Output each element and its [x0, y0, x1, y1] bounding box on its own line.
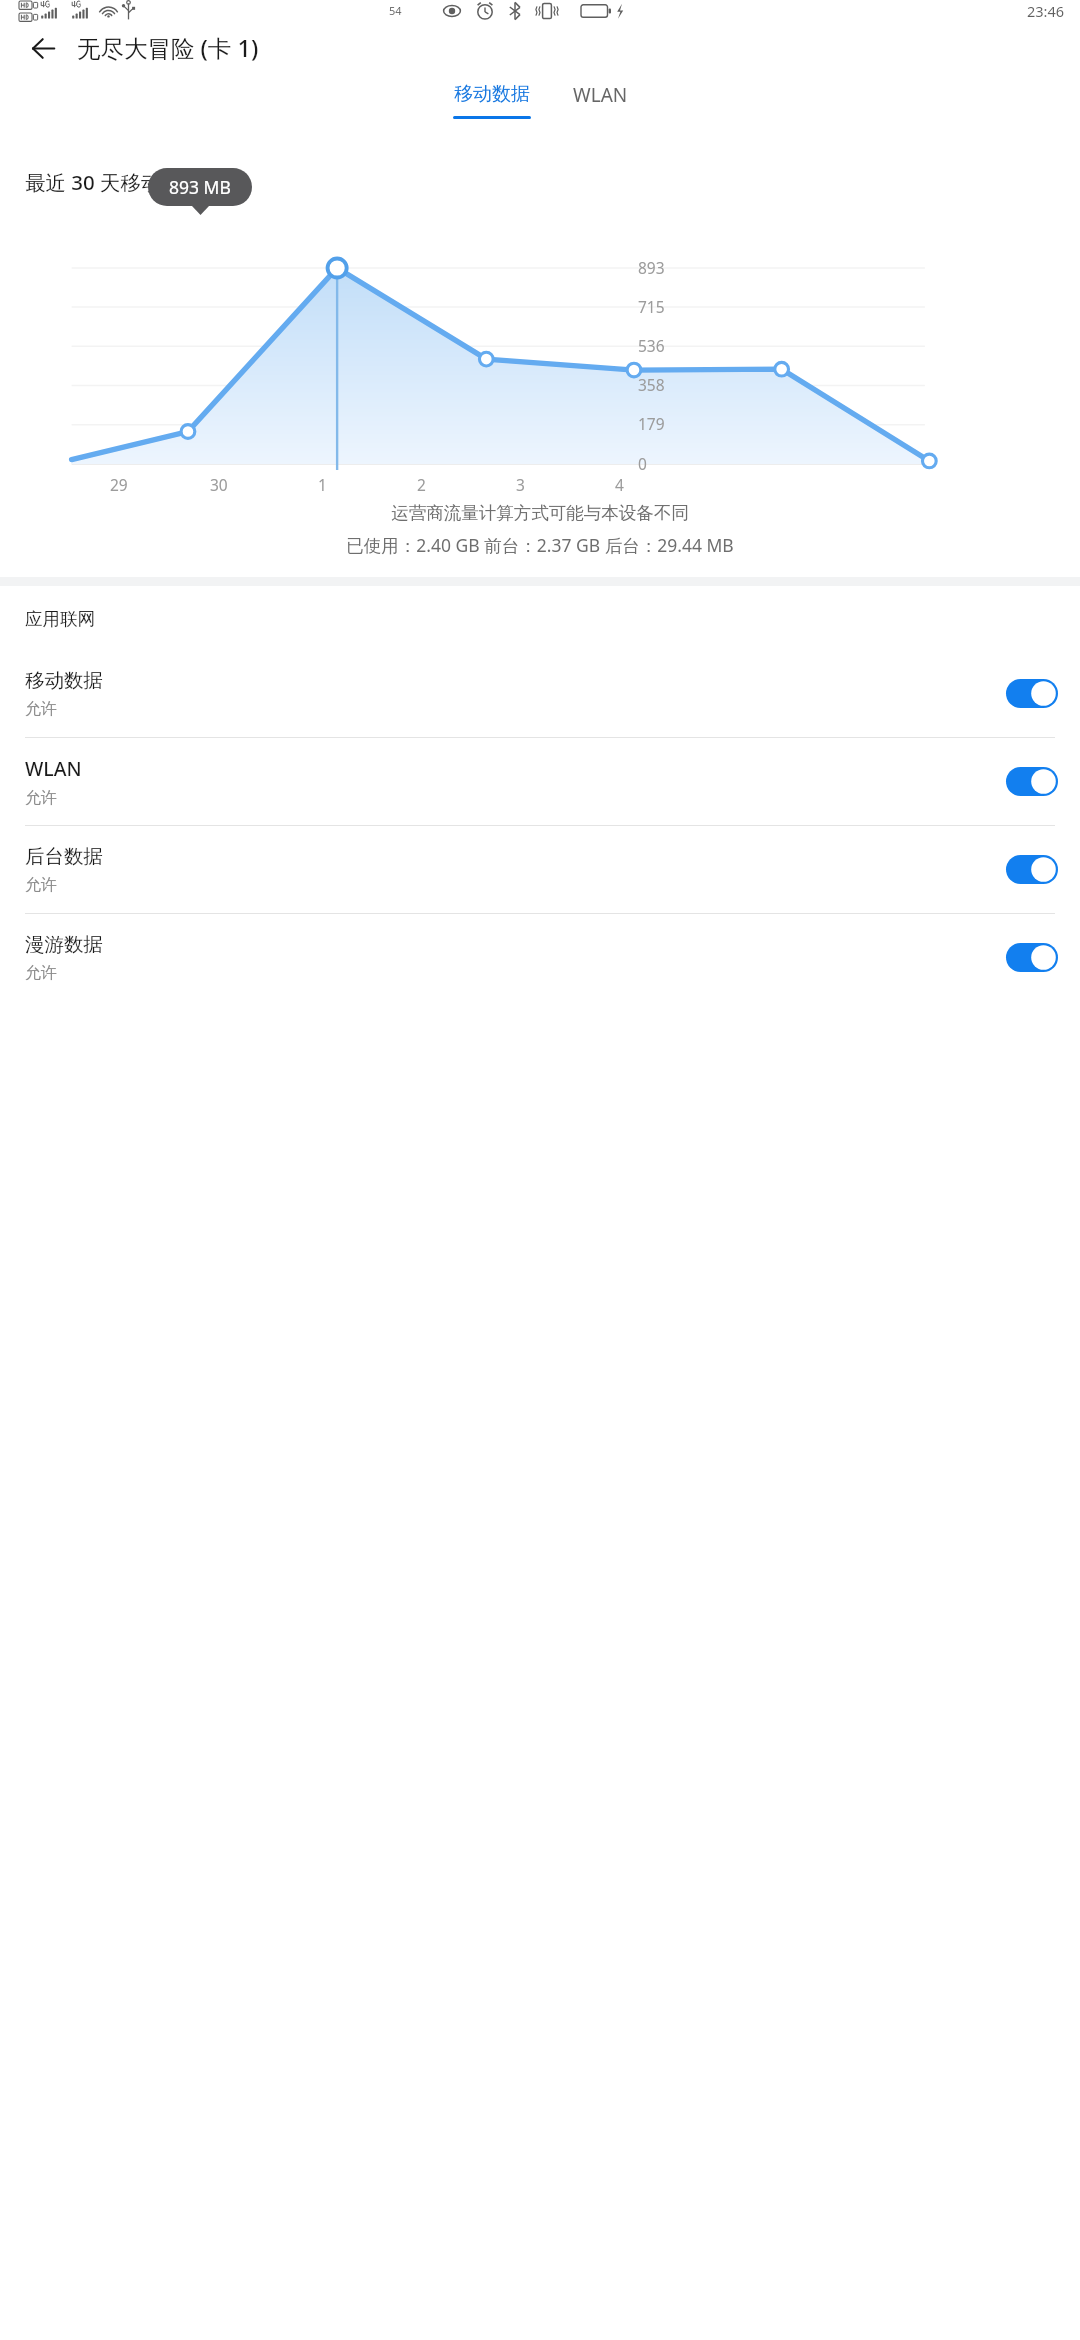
button[interactable]: 移动数据 [449, 82, 535, 119]
staticText: 23:46 [1027, 1, 1065, 21]
button[interactable]: 漫游数据 开关 [1006, 943, 1058, 972]
staticText: 358 [638, 374, 665, 395]
staticText: 应用联网 [25, 608, 95, 630]
button[interactable]: 返回 [20, 25, 66, 71]
staticText: 30 [210, 474, 228, 495]
staticText: 无尽大冒险 (卡 1) [77, 32, 259, 64]
staticText: 最近 30 天移动数据 [25, 168, 203, 196]
button[interactable]: 漫游数据 [0, 914, 1080, 1001]
button[interactable]: 后台数据 [0, 826, 1080, 913]
button[interactable]: 后台数据 开关 [1006, 855, 1058, 884]
staticText: 29 [110, 474, 128, 495]
staticText: 0 [638, 453, 647, 474]
staticText: WLAN [25, 755, 82, 782]
button[interactable]: WLAN [0, 738, 1080, 825]
button[interactable]: WLAN 开关 [1006, 767, 1058, 796]
staticText: 移动数据 [454, 82, 530, 106]
staticText: 54 [389, 3, 402, 18]
staticText: 允许 [25, 875, 57, 895]
button[interactable]: 移动数据 开关 [1006, 679, 1058, 708]
button[interactable]: 最近 30 天移动数据 [0, 168, 1080, 196]
staticText: 2 [417, 474, 426, 495]
staticText: 893 MB [169, 175, 231, 199]
staticText: 漫游数据 [25, 932, 103, 957]
staticText: 3 [516, 474, 525, 495]
button[interactable]: WLAN [569, 82, 632, 108]
staticText: 179 [638, 413, 665, 434]
staticText: 536 [638, 335, 665, 356]
staticText: 允许 [25, 963, 57, 983]
staticText: 允许 [25, 699, 57, 719]
staticText: 后台数据 [25, 844, 103, 869]
staticText: 允许 [25, 788, 57, 808]
staticText: 移动数据 [25, 668, 103, 693]
staticText: 1 [318, 474, 327, 495]
staticText: 715 [638, 296, 665, 317]
staticText: 4 [615, 474, 624, 495]
staticText: WLAN [573, 82, 628, 108]
staticText: 已使用：2.40 GB 前台：2.37 GB 后台：29.44 MB [346, 533, 734, 557]
staticText: 运营商流量计算方式可能与本设备不同 [391, 502, 689, 524]
button[interactable]: 移动数据 [0, 650, 1080, 737]
staticText: 893 [638, 257, 665, 278]
